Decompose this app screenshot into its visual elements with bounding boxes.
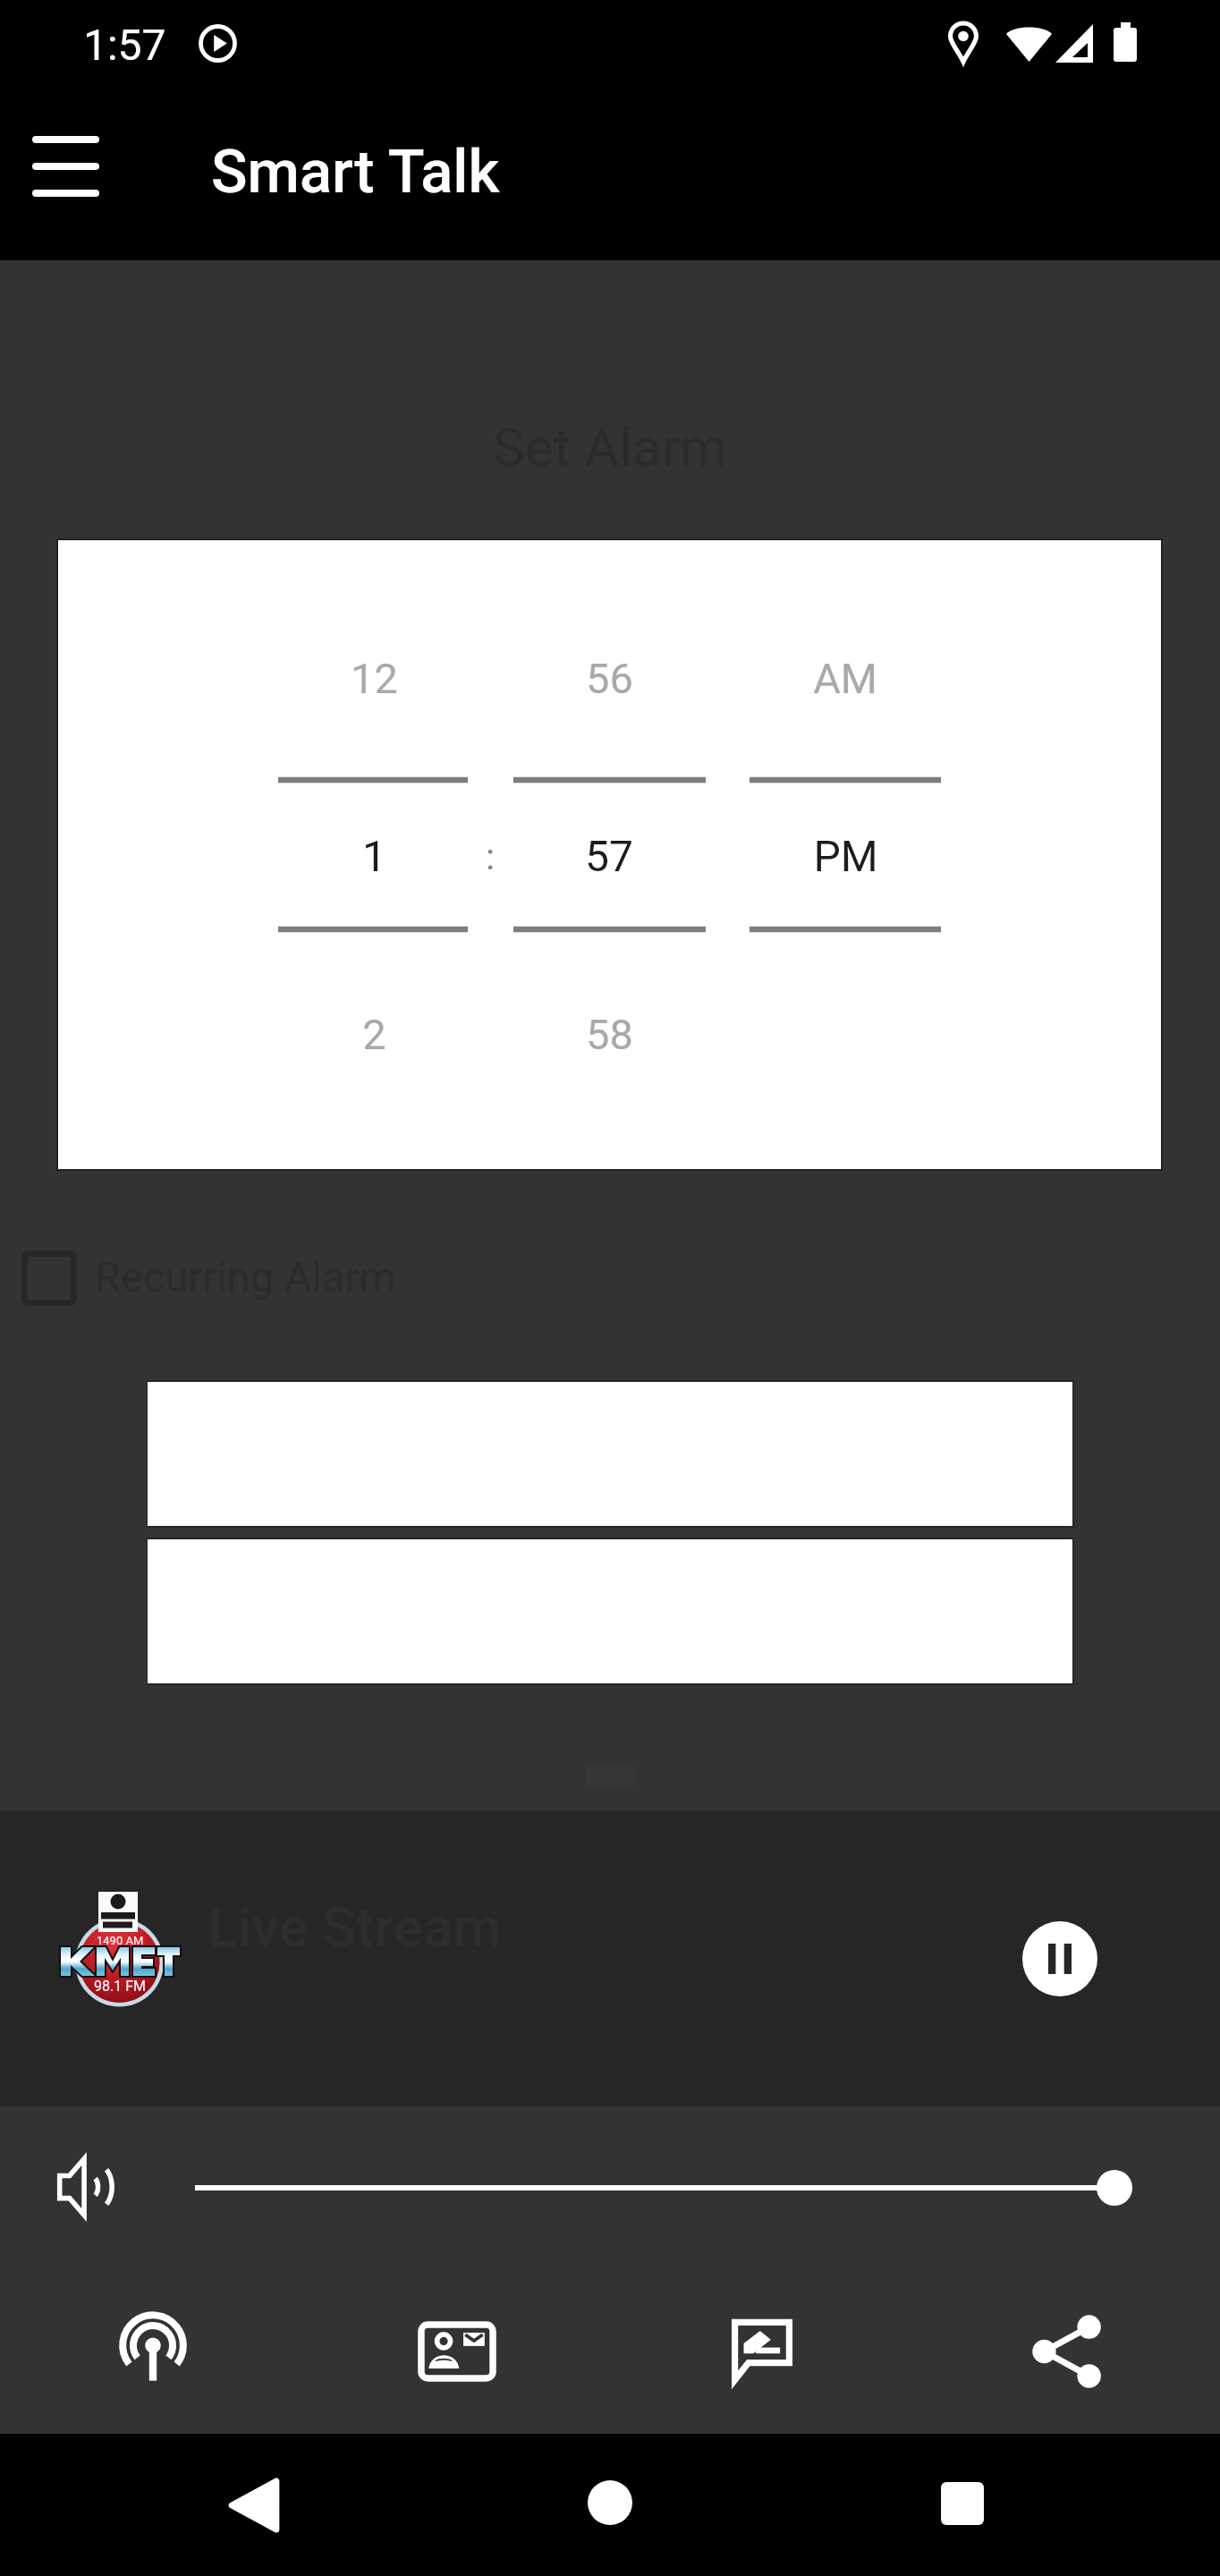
- staticText: 1: [362, 831, 386, 881]
- staticText: PM: [813, 831, 878, 881]
- button[interactable]: Pause: [1022, 1921, 1097, 1996]
- button[interactable]: Share: [991, 2275, 1143, 2428]
- staticText: Smart Talk: [211, 137, 500, 208]
- button[interactable]: [148, 1539, 1072, 1683]
- staticText: AM: [813, 654, 877, 703]
- staticText: 57: [585, 831, 633, 881]
- staticText: 12: [351, 654, 398, 703]
- button[interactable]: Open navigation menu: [22, 123, 108, 209]
- staticText: :: [486, 836, 495, 878]
- button[interactable]: Back: [209, 2461, 299, 2550]
- button[interactable]: Home: [565, 2458, 655, 2547]
- staticText: 98.1 FM: [94, 1978, 146, 1994]
- staticText: 2: [362, 1010, 386, 1059]
- button[interactable]: Broadcast: [77, 2275, 229, 2428]
- other: Volume: [56, 2156, 123, 2218]
- staticText: 1490 AM: [97, 1934, 144, 1947]
- staticText: 1:57: [83, 20, 166, 70]
- button[interactable]: Review: [686, 2275, 838, 2428]
- staticText: 58: [586, 1010, 633, 1059]
- staticText: 56: [586, 654, 633, 703]
- button[interactable]: Contact: [381, 2275, 533, 2428]
- button[interactable]: Recent apps: [918, 2459, 1007, 2548]
